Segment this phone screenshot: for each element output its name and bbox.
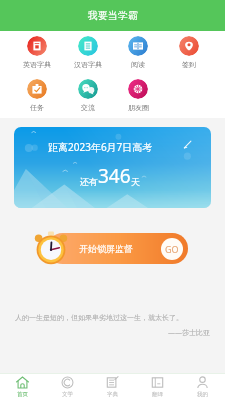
staticText: 还有 [80,176,98,187]
button[interactable]: 文学 [45,373,90,400]
button[interactable]: 英语字典 [15,36,59,69]
staticText: 朋友圈 [128,103,149,112]
staticText: 英语字典 [23,60,51,69]
staticText: 翻译 [152,391,163,398]
staticText: 我的 [197,391,208,398]
staticText: 我要当学霸 [88,9,138,22]
staticText: 346 [98,163,131,189]
staticText: 签到 [182,60,196,69]
other: 开始锁屏监督 [33,230,73,266]
staticText: 交流 [81,103,95,112]
button[interactable]: 任务 [15,79,59,112]
button[interactable]: 汉语字典 [66,36,110,69]
staticText: ——莎士比亚 [15,328,210,338]
staticText: 开始锁屏监督 [79,243,133,254]
button[interactable]: 翻译 [135,373,180,400]
button[interactable]: 阅读 [116,36,160,69]
staticText: 人的一生是短的，但如果卑劣地过这一生，就太长了。 [15,313,183,322]
button[interactable]: 开始锁屏监督 [47,233,188,264]
staticText: 任务 [30,103,44,112]
button[interactable]: 我的 [180,373,225,400]
staticText: 字典 [107,391,118,398]
staticText: 天 [131,176,140,187]
staticText: 距离2023年6月7日高考 [48,140,153,154]
staticText: 文学 [62,391,73,398]
button[interactable]: 签到 [167,36,211,69]
other: 编辑 [183,140,192,149]
button[interactable]: 交流 [66,79,110,112]
staticText: GO [165,243,179,255]
staticText: 首页 [17,391,28,398]
button[interactable]: 朋友圈 [116,79,160,112]
staticText: 阅读 [131,60,145,69]
button[interactable]: 字典 [90,373,135,400]
button[interactable]: GO [161,238,183,260]
staticText: 汉语字典 [74,60,102,69]
button[interactable]: 距离2023年6月7日高考 [14,127,211,208]
button[interactable]: 首页 [0,373,45,400]
